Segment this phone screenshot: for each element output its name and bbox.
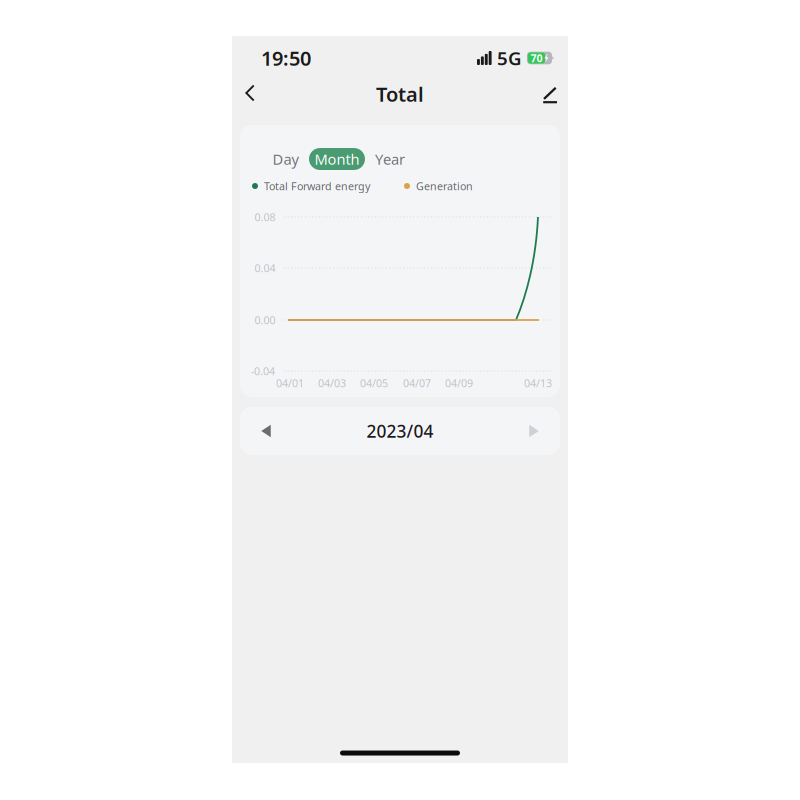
button[interactable]: Month — [309, 147, 365, 171]
staticText: 70 — [530, 51, 542, 65]
staticText: 2023/04 — [366, 419, 433, 442]
button[interactable]: Next month — [500, 407, 560, 455]
staticText: 0.08 — [254, 210, 275, 224]
staticText: Day — [272, 149, 298, 169]
button[interactable]: Year — [365, 147, 415, 171]
staticText: 0.04 — [254, 261, 275, 275]
staticText: Year — [375, 149, 405, 169]
staticText: Total — [376, 81, 424, 107]
staticText: 19:50 — [261, 45, 311, 71]
staticText: Generation — [416, 179, 473, 193]
staticText: 04/01 — [276, 376, 304, 390]
staticText: 04/07 — [403, 376, 431, 390]
staticText: Month — [314, 149, 359, 169]
staticText: 04/09 — [445, 376, 473, 390]
staticText: 04/05 — [360, 376, 388, 390]
button[interactable]: Back — [232, 80, 274, 122]
button[interactable]: Day — [262, 147, 309, 171]
staticText: -0.04 — [251, 364, 275, 378]
staticText: 0.00 — [254, 313, 275, 327]
button[interactable]: Previous month — [240, 407, 300, 455]
staticText: Total Forward energy — [264, 179, 370, 193]
staticText: 04/03 — [318, 376, 346, 390]
button[interactable]: Edit — [525, 80, 567, 122]
staticText: 04/13 — [524, 376, 552, 390]
staticText: 5G — [497, 46, 522, 70]
